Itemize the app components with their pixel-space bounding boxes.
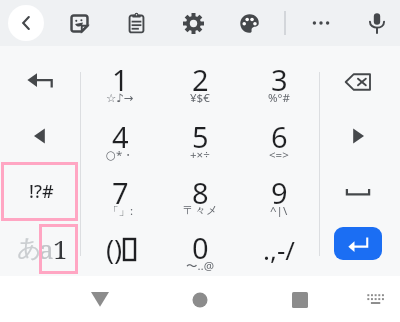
button[interactable]: Home [178,278,222,322]
staticText: 1 [53,231,68,266]
button[interactable]: Enter [334,227,382,260]
staticText: .,-/ [263,232,295,267]
button[interactable]: 3 [240,53,318,109]
button[interactable]: 4 [81,110,159,166]
staticText: 4 [112,117,129,151]
button[interactable]: Recents [278,278,322,322]
button[interactable]: Switch input mode [1,222,79,272]
staticText: 9 [271,173,288,207]
staticText: %°# [268,90,290,104]
staticText: !?# [29,179,54,204]
staticText: 8 [192,173,209,207]
button[interactable]: Brackets [81,221,159,277]
staticText: a [39,231,54,266]
button[interactable]: Cursor right [318,109,398,163]
button[interactable]: Back [78,278,122,322]
staticText: () [106,231,123,268]
staticText: 〜‥@ [186,258,215,272]
staticText: ¥$€ [190,90,210,104]
button[interactable]: 0 [161,221,239,277]
staticText: 6 [271,117,288,151]
button[interactable]: More options [303,5,339,41]
staticText: ○*・ [106,147,134,161]
button[interactable]: 6 [240,110,318,166]
staticText: 3 [271,60,288,94]
button[interactable]: Themes [231,5,267,41]
button[interactable]: Stickers [61,5,97,41]
button[interactable]: Clipboard [118,5,154,41]
staticText: 〒々メ [183,203,218,217]
staticText: 2 [192,60,209,94]
staticText: ☆♪→ [106,91,134,104]
staticText: <=> [269,147,289,161]
staticText: 「」: [107,203,134,217]
staticText: 5 [192,117,209,151]
button[interactable]: Back [8,5,44,41]
staticText: 7 [112,173,129,207]
button[interactable]: 9 [240,166,318,222]
staticText: ^|\ [270,203,288,217]
button[interactable]: Space [318,165,398,219]
button[interactable]: 7 [81,166,159,222]
button[interactable]: Undo [1,54,79,108]
button[interactable]: 8 [161,166,239,222]
button[interactable]: 5 [161,110,239,166]
button[interactable]: Voice input [359,5,395,41]
button[interactable]: !?# [2,164,80,218]
button[interactable]: 1 [81,53,159,109]
staticText: +×÷ [190,147,210,161]
staticText: 0 [192,228,209,262]
button[interactable]: Show keyboard [353,278,397,322]
button[interactable]: 2 [161,53,239,109]
button[interactable]: Settings [175,5,211,41]
button[interactable]: .,-/ [240,222,318,276]
button[interactable]: Backspace [318,55,398,109]
button[interactable]: Cursor left [1,109,79,163]
staticText: あ [17,233,42,263]
staticText: 1 [112,60,129,94]
